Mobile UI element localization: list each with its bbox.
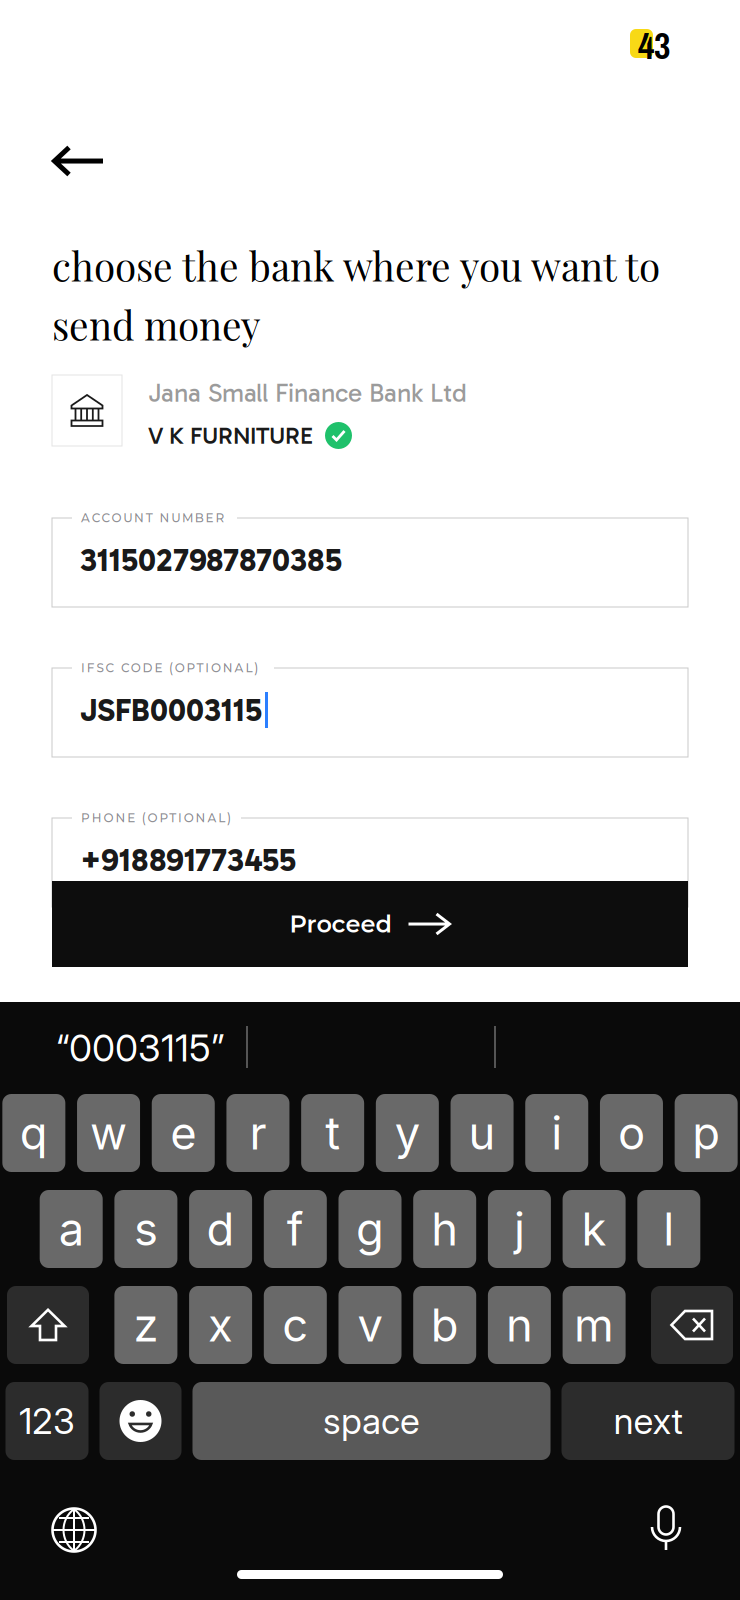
button[interactable]: Emoji [99,1382,181,1460]
button[interactable]: Back [52,146,105,176]
staticText: PHONE (OPTIONAL) [81,811,231,825]
staticText: e [170,1106,196,1160]
button[interactable]: z [114,1286,177,1364]
staticText: JSFB0003115 [80,691,262,729]
button[interactable]: Proceed [52,881,688,967]
staticText: i [551,1106,562,1160]
staticText: j [514,1202,525,1256]
button[interactable]: Switch keyboard [52,1508,95,1551]
button[interactable]: t [301,1094,364,1172]
button[interactable]: s [114,1190,177,1268]
staticText: p [692,1106,720,1160]
button[interactable]: i [525,1094,588,1172]
button[interactable]: x [189,1286,252,1364]
button[interactable]: space [192,1382,550,1460]
staticText: a [59,1202,84,1256]
button[interactable]: y [376,1094,439,1172]
staticText: z [133,1298,158,1352]
staticText: x [208,1298,233,1352]
button[interactable]: c [264,1286,327,1364]
staticText: c [282,1298,308,1352]
button[interactable]: u [451,1094,514,1172]
button[interactable]: Dictate [647,1504,685,1552]
staticText: V K FURNITURE [148,421,313,450]
staticText: next [613,1399,682,1443]
staticText: w [90,1106,127,1160]
button[interactable]: Delete [651,1286,733,1364]
button[interactable]: f [264,1190,327,1268]
staticText: choose the bank where you want to [52,240,660,291]
button[interactable]: p [675,1094,738,1172]
staticText: u [469,1106,496,1160]
button[interactable]: w [77,1094,140,1172]
staticText: n [506,1298,533,1352]
staticText: r [249,1106,266,1160]
staticText: f [287,1202,304,1256]
staticText: b [431,1298,459,1352]
button[interactable]: q [2,1094,65,1172]
button[interactable]: 123 [5,1382,88,1460]
button[interactable]: n [488,1286,551,1364]
button[interactable]: v [338,1286,401,1364]
staticText: d [207,1202,235,1256]
staticText: ACCOUNT NUMBER [81,511,224,525]
button[interactable]: d [189,1190,252,1268]
button[interactable]: k [563,1190,626,1268]
staticText: 43 [638,22,670,70]
button[interactable]: h [413,1190,476,1268]
staticText: space [323,1399,420,1443]
staticText: k [582,1202,607,1256]
staticText: y [395,1106,420,1160]
staticText: 3115027987870385 [80,541,342,579]
staticText: h [431,1202,458,1256]
button[interactable]: Shift [7,1286,89,1364]
button[interactable]: j [488,1190,551,1268]
button[interactable]: e [152,1094,215,1172]
staticText: m [574,1298,614,1352]
staticText: “0003115” [56,1025,225,1071]
staticText: s [134,1202,158,1256]
button[interactable]: a [40,1190,103,1268]
button[interactable]: r [226,1094,289,1172]
staticText: g [356,1202,384,1256]
staticText: send money [52,299,260,350]
staticText: o [618,1106,645,1160]
staticText: Jana Small Finance Bank Ltd [148,377,467,409]
staticText: v [357,1298,382,1352]
button[interactable]: m [563,1286,626,1364]
button[interactable]: l [637,1190,700,1268]
staticText: Proceed [289,909,391,939]
button[interactable]: g [338,1190,401,1268]
staticText: 123 [19,1399,75,1443]
button[interactable]: next [561,1382,734,1460]
staticText: q [20,1106,48,1160]
button[interactable]: o [600,1094,663,1172]
staticText: +918891773455 [80,841,296,879]
staticText: t [325,1106,340,1160]
staticText: IFSC CODE (OPTIONAL) [81,661,258,675]
button[interactable]: b [413,1286,476,1364]
staticText: l [663,1202,674,1256]
